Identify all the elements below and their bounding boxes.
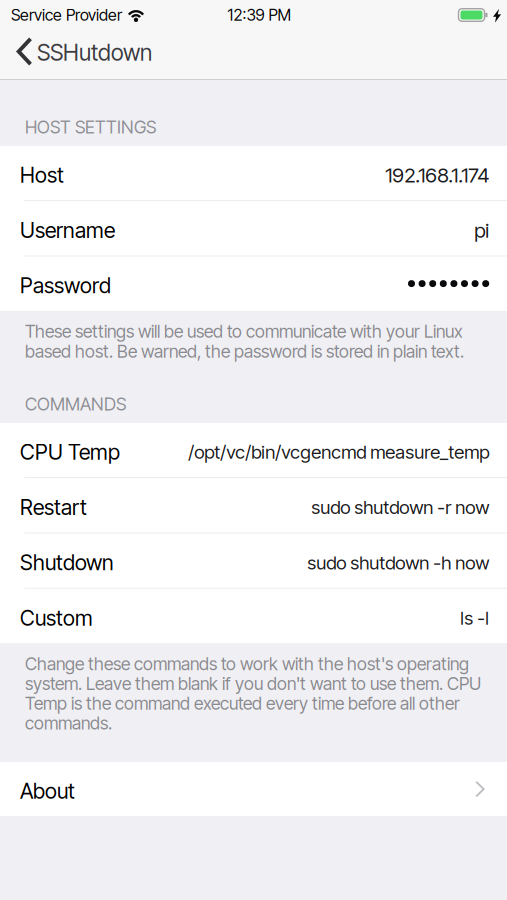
staticText: SSHutdown bbox=[37, 39, 152, 66]
staticText: 192.168.1.174 bbox=[385, 163, 489, 187]
staticText: Change these commands to work with the h… bbox=[25, 653, 481, 734]
staticText: /opt/vc/bin/vcgencmd measure_temp bbox=[188, 441, 489, 463]
button[interactable]: Custom bbox=[0, 589, 507, 643]
staticText: Service Provider bbox=[11, 5, 122, 25]
staticText: ls -l bbox=[460, 607, 489, 629]
button[interactable]: Shutdown bbox=[0, 533, 507, 588]
staticText: These settings will be used to communica… bbox=[25, 321, 464, 362]
button[interactable]: Username bbox=[0, 201, 507, 255]
staticText: pi bbox=[474, 218, 489, 243]
button[interactable]: About bbox=[0, 762, 507, 816]
button[interactable]: SSHutdown bbox=[0, 30, 164, 79]
staticText: Shutdown bbox=[20, 550, 114, 575]
staticText: Password bbox=[20, 273, 111, 298]
button[interactable]: CPU Temp bbox=[0, 423, 507, 477]
staticText: Custom bbox=[20, 605, 93, 631]
staticText: Host bbox=[20, 162, 64, 188]
staticText: sudo shutdown -h now bbox=[307, 551, 489, 574]
staticText: sudo shutdown -r now bbox=[311, 496, 489, 519]
button[interactable]: Password bbox=[0, 256, 507, 311]
staticText: Username bbox=[20, 217, 115, 243]
button[interactable]: Host bbox=[0, 146, 507, 200]
staticText: About bbox=[20, 778, 75, 804]
staticText: HOST SETTINGS bbox=[25, 116, 156, 138]
button[interactable]: Restart bbox=[0, 478, 507, 532]
staticText: 12:39 PM bbox=[227, 5, 291, 25]
staticText: Restart bbox=[20, 494, 87, 520]
staticText: COMMANDS bbox=[25, 393, 126, 415]
staticText: CPU Temp bbox=[20, 439, 120, 465]
